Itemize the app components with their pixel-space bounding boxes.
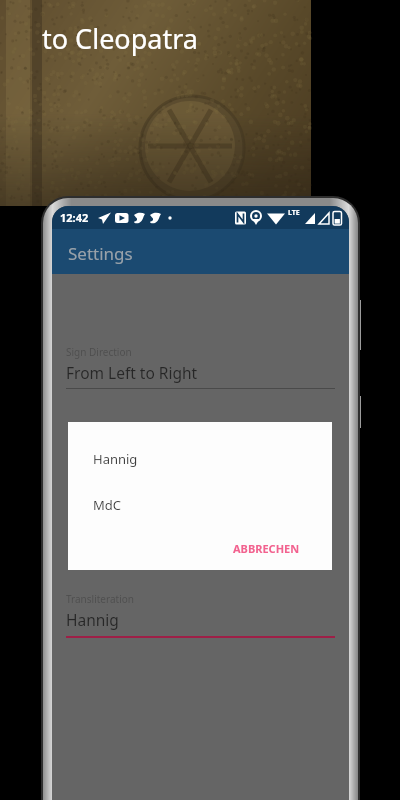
staticText: From Left to Right xyxy=(66,362,198,383)
button[interactable]: MdC xyxy=(68,484,332,530)
staticText: MdC xyxy=(93,496,122,514)
staticText: LTE xyxy=(288,208,300,218)
staticText: Settings xyxy=(68,242,133,265)
staticText: Sign Direction xyxy=(66,345,132,359)
staticText: ABBRECHEN xyxy=(233,541,300,556)
button[interactable]: ABBRECHEN xyxy=(230,534,322,562)
button[interactable]: Hannig xyxy=(68,438,332,484)
staticText: to Cleopatra xyxy=(42,20,198,57)
staticText: Hannig xyxy=(66,609,119,630)
staticText: Hannig xyxy=(93,450,138,468)
button[interactable]: Transliteration xyxy=(52,589,349,647)
button[interactable]: Sign Direction xyxy=(52,342,349,400)
button[interactable]: Settings xyxy=(52,229,349,274)
staticText: 12:42 xyxy=(60,210,89,225)
staticText: Transliteration xyxy=(66,592,134,606)
